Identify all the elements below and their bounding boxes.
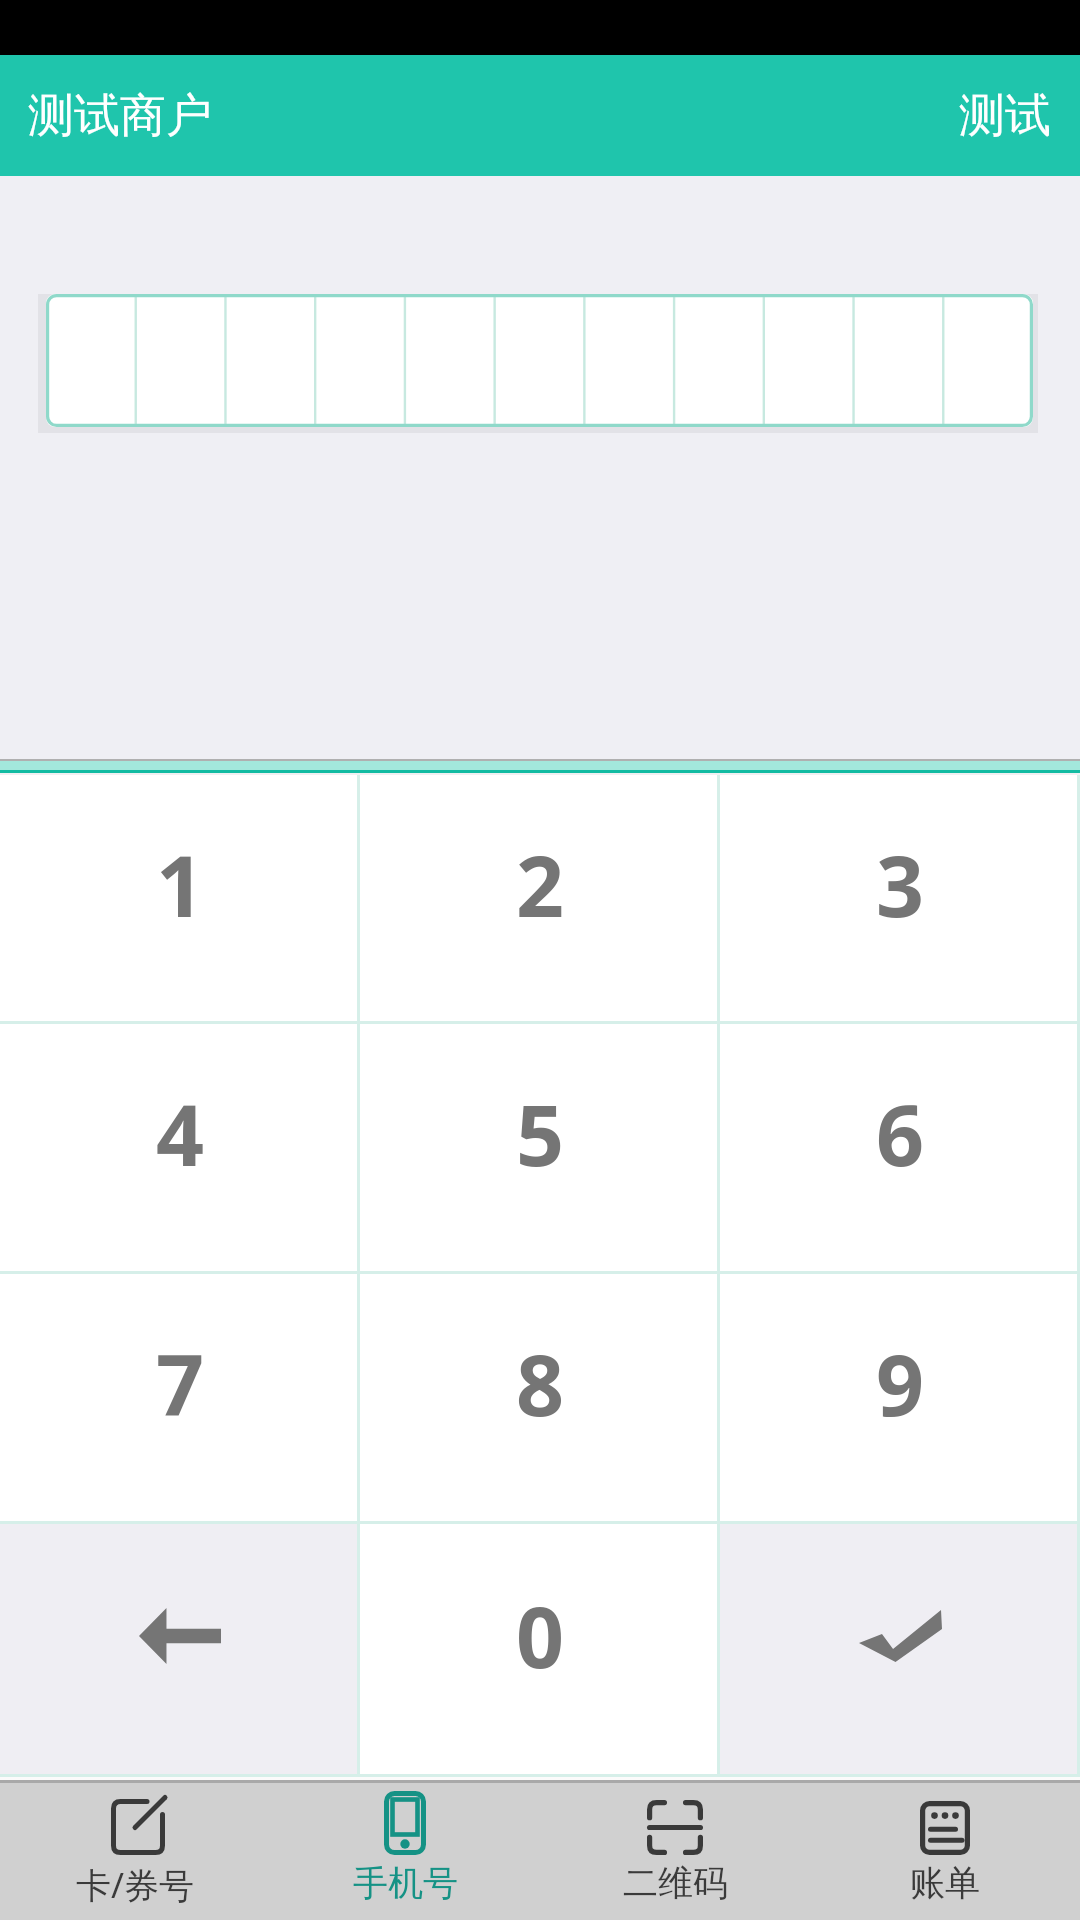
button[interactable]: 5: [360, 1024, 720, 1274]
staticText: 测试商户: [28, 87, 212, 145]
staticText: 2: [516, 827, 565, 941]
button[interactable]: 手机号: [270, 1783, 540, 1920]
button[interactable]: 卡/券号: [0, 1783, 270, 1920]
staticText: 3: [876, 827, 925, 941]
staticText: 4: [156, 1076, 205, 1190]
button[interactable]: 二维码: [540, 1783, 810, 1920]
staticText: 8: [516, 1326, 565, 1440]
button[interactable]: 3: [720, 775, 1080, 1024]
staticText: 1: [156, 827, 205, 941]
button[interactable]: 4: [0, 1024, 360, 1274]
staticText: 7: [156, 1326, 205, 1440]
staticText: 卡/券号: [76, 1861, 195, 1909]
button[interactable]: 测试: [929, 55, 1080, 176]
staticText: 5: [516, 1076, 565, 1190]
staticText: 账单: [910, 1861, 980, 1905]
button[interactable]: 9: [720, 1274, 1080, 1524]
staticText: 测试: [959, 87, 1051, 145]
staticText: 6: [876, 1076, 925, 1190]
button[interactable]: 0: [360, 1524, 720, 1777]
staticText: 手机号: [353, 1861, 458, 1905]
button[interactable]: 账单: [810, 1783, 1080, 1920]
button[interactable]: Backspace: [0, 1524, 360, 1777]
button[interactable]: Confirm: [720, 1524, 1080, 1777]
button[interactable]: 手机号输入框: [38, 288, 1042, 435]
button[interactable]: 1: [0, 775, 360, 1024]
staticText: 0: [516, 1578, 565, 1692]
staticText: 二维码: [623, 1861, 728, 1905]
button[interactable]: 2: [360, 775, 720, 1024]
button[interactable]: 8: [360, 1274, 720, 1524]
staticText: 9: [876, 1326, 925, 1440]
button[interactable]: 6: [720, 1024, 1080, 1274]
button[interactable]: 7: [0, 1274, 360, 1524]
